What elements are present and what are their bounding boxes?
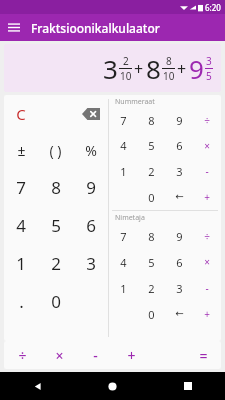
button[interactable]: 7: [109, 224, 137, 249]
staticText: 6: [176, 255, 183, 270]
staticText: 2: [148, 281, 155, 296]
button[interactable]: Menu: [0, 14, 27, 41]
button[interactable]: ÷: [4, 341, 41, 369]
staticText: C: [16, 104, 26, 124]
staticText: 3: [103, 51, 118, 86]
staticText: 0: [148, 307, 155, 322]
staticText: 0: [51, 290, 61, 313]
button[interactable]: 4: [4, 206, 38, 244]
button[interactable]: 2: [137, 275, 165, 301]
staticText: 3: [176, 164, 183, 179]
button[interactable]: ±: [4, 132, 38, 169]
button[interactable]: C: [4, 95, 38, 132]
button[interactable]: ←: [165, 301, 193, 327]
button[interactable]: 3: [165, 158, 193, 184]
button[interactable]: -: [77, 341, 113, 369]
staticText: 2: [123, 54, 129, 68]
staticText: 4: [120, 138, 127, 153]
staticText: 7: [16, 176, 26, 199]
button[interactable]: 8: [38, 169, 73, 206]
button[interactable]: 0: [38, 282, 73, 320]
button[interactable]: 1: [109, 158, 137, 184]
staticText: 7: [120, 113, 127, 128]
button[interactable]: 8: [137, 224, 165, 249]
staticText: 8: [148, 113, 155, 128]
button[interactable]: 0: [137, 184, 165, 210]
button[interactable]: 3: [165, 275, 193, 301]
staticText: 5: [148, 255, 155, 270]
staticText: 3: [86, 252, 96, 275]
button[interactable]: +: [193, 301, 221, 327]
button[interactable]: 0: [137, 301, 165, 327]
button[interactable]: 3: [4, 44, 221, 92]
button[interactable]: 6: [73, 206, 108, 244]
button[interactable]: -: [193, 275, 221, 301]
button[interactable]: -: [193, 158, 221, 184]
button[interactable]: ←: [165, 184, 193, 210]
button[interactable]: =: [185, 341, 221, 369]
staticText: +: [177, 58, 187, 80]
button[interactable]: 9: [73, 169, 108, 206]
button[interactable]: 2: [38, 244, 73, 282]
staticText: ×: [204, 139, 210, 153]
button[interactable]: 7: [4, 169, 38, 206]
button[interactable]: 3: [73, 244, 108, 282]
button[interactable]: 7: [109, 108, 137, 133]
staticText: Fraktsioonikalkulaator: [31, 20, 160, 36]
button[interactable]: ( ): [38, 132, 73, 169]
button[interactable]: Recent apps: [150, 372, 225, 400]
button[interactable]: ×: [193, 249, 221, 275]
staticText: ×: [204, 255, 210, 269]
button[interactable]: Backspace: [73, 95, 108, 132]
staticText: 5: [206, 69, 212, 83]
button[interactable]: 5: [38, 206, 73, 244]
button[interactable]: 2: [137, 158, 165, 184]
button[interactable]: ÷: [193, 108, 221, 133]
button[interactable]: %: [73, 132, 108, 169]
button[interactable]: 9: [165, 108, 193, 133]
staticText: +: [134, 58, 144, 80]
staticText: 5: [148, 138, 155, 153]
button[interactable]: 8: [137, 108, 165, 133]
button[interactable]: 1: [4, 244, 38, 282]
button[interactable]: ÷: [193, 224, 221, 249]
staticText: 2: [51, 252, 61, 275]
button[interactable]: 9: [165, 224, 193, 249]
button[interactable]: +: [193, 184, 221, 210]
button[interactable]: 5: [137, 249, 165, 275]
staticText: 10: [120, 69, 132, 83]
staticText: .: [19, 290, 24, 313]
button[interactable]: 4: [109, 133, 137, 158]
staticText: +: [204, 190, 210, 204]
button[interactable]: 4: [109, 249, 137, 275]
staticText: 8: [51, 176, 61, 199]
staticText: 10: [163, 69, 175, 83]
staticText: ÷: [204, 230, 210, 244]
button[interactable]: 5: [137, 133, 165, 158]
button[interactable]: ×: [193, 133, 221, 158]
staticText: ( ): [49, 141, 62, 160]
staticText: +: [204, 307, 210, 321]
staticText: Nimetaja: [115, 213, 145, 223]
staticText: 6: [86, 214, 96, 237]
staticText: ←: [175, 308, 184, 320]
staticText: 5: [51, 214, 61, 237]
button[interactable]: +: [113, 341, 149, 369]
staticText: 4: [120, 255, 127, 270]
staticText: 4: [16, 214, 26, 237]
staticText: 7: [120, 229, 127, 244]
staticText: 8: [148, 229, 155, 244]
button[interactable]: Home: [75, 372, 150, 400]
button[interactable]: ×: [41, 341, 77, 369]
staticText: 6:20: [205, 2, 221, 13]
button[interactable]: .: [4, 282, 38, 320]
button[interactable]: 1: [109, 275, 137, 301]
button[interactable]: Back: [0, 372, 75, 400]
staticText: ÷: [18, 346, 27, 365]
staticText: %: [85, 141, 97, 160]
button[interactable]: 6: [165, 133, 193, 158]
staticText: 9: [176, 113, 183, 128]
button[interactable]: 6: [165, 249, 193, 275]
staticText: 9: [189, 51, 204, 86]
staticText: ×: [55, 346, 64, 365]
